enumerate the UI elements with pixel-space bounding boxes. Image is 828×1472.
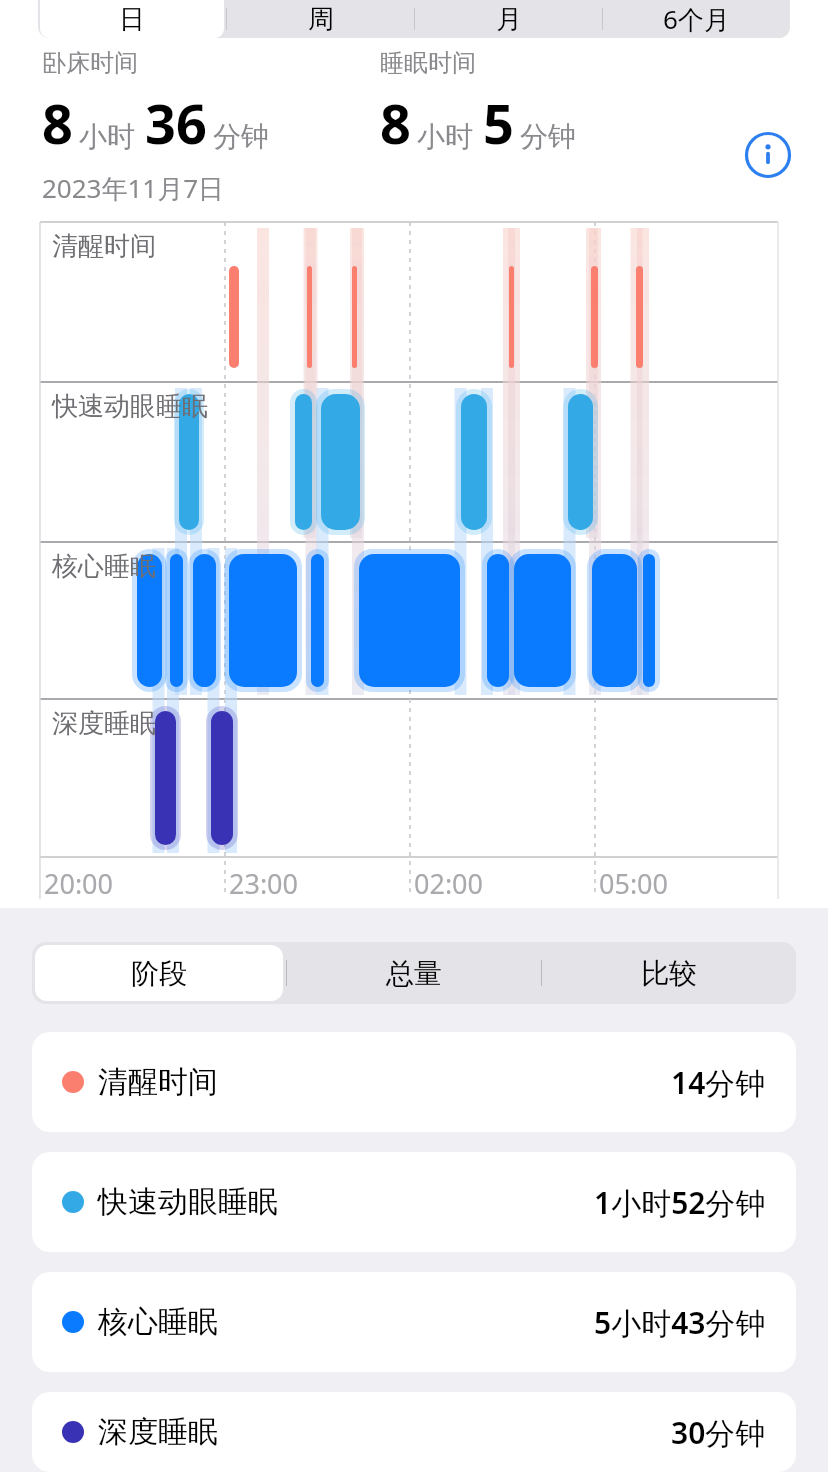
staticText: 深度睡眠 (98, 1413, 218, 1451)
staticText: 分钟 (213, 119, 269, 154)
staticText: 8 (42, 86, 73, 160)
staticText: 23:00 (229, 865, 299, 902)
staticText: 核心睡眠 (52, 550, 156, 583)
staticText: 02:00 (414, 865, 484, 902)
button[interactable]: 日 (40, 0, 224, 38)
button[interactable]: 比较 (545, 945, 793, 1001)
button[interactable]: 总量 (290, 945, 538, 1001)
staticText: 8 (380, 86, 411, 160)
button[interactable]: 信息 (744, 131, 792, 179)
staticText: 小时 (79, 119, 135, 154)
staticText: 核心睡眠 (98, 1303, 218, 1341)
button[interactable]: 月 (417, 0, 600, 38)
staticText: 阶段 (131, 956, 187, 991)
staticText: 清醒时间 (98, 1063, 218, 1101)
staticText: 周 (308, 3, 334, 36)
staticText: 总量 (386, 956, 442, 991)
button[interactable]: 6个月 (605, 0, 788, 38)
staticText: 6个月 (663, 1, 730, 37)
staticText: 深度睡眠 (52, 707, 156, 740)
staticText: 日 (119, 3, 145, 36)
staticText: 卧床时间 (42, 48, 138, 78)
staticText: 睡眠时间 (380, 48, 476, 78)
staticText: 快速动眼睡眠 (52, 390, 208, 423)
button[interactable]: 深度睡眠 (32, 1392, 796, 1472)
staticText: 月 (496, 3, 522, 36)
staticText: 5小时43分钟 (594, 1302, 766, 1343)
staticText: 比较 (641, 956, 697, 991)
staticText: 20:00 (44, 865, 114, 902)
staticText: 分钟 (520, 119, 576, 154)
staticText: 小时 (417, 119, 473, 154)
staticText: 2023年11月7日 (42, 170, 225, 206)
staticText: 清醒时间 (52, 230, 156, 263)
button[interactable]: 阶段 (35, 945, 283, 1001)
staticText: 36 (145, 86, 207, 160)
staticText: 14分钟 (671, 1062, 766, 1103)
button[interactable]: 周 (229, 0, 412, 38)
staticText: 30分钟 (671, 1412, 766, 1453)
staticText: 5 (483, 86, 514, 160)
staticText: 05:00 (599, 865, 669, 902)
button[interactable]: 核心睡眠 (32, 1272, 796, 1372)
staticText: 快速动眼睡眠 (98, 1183, 278, 1221)
button[interactable]: 快速动眼睡眠 (32, 1152, 796, 1252)
button[interactable]: 清醒时间 (32, 1032, 796, 1132)
staticText: 1小时52分钟 (594, 1182, 766, 1223)
